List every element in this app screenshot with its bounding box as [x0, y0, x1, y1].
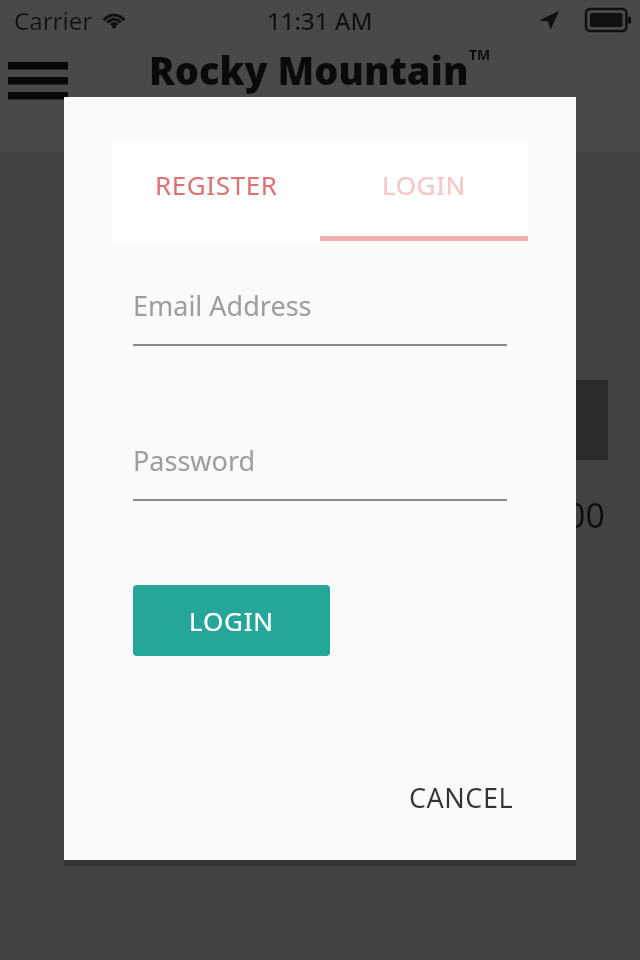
staticText: TM	[469, 45, 491, 64]
button[interactable]: LOGIN	[133, 585, 330, 656]
staticText: 00	[566, 492, 605, 538]
staticText: D	[363, 98, 409, 182]
staticText: Password	[133, 442, 256, 479]
staticText: 11:31 AM	[267, 4, 373, 37]
button[interactable]: Email Address	[133, 287, 507, 346]
button[interactable]: LOGIN	[320, 143, 528, 241]
staticText: D	[253, 98, 299, 182]
staticText: Carrier	[14, 4, 93, 37]
staticText: CANCEL	[409, 779, 514, 816]
staticText: LOGIN	[382, 167, 466, 202]
button[interactable]: Open navigation menu	[0, 48, 76, 106]
staticText: Email Address	[133, 287, 312, 324]
staticText: R	[409, 98, 451, 182]
button[interactable]: CANCEL	[401, 769, 522, 826]
staticText: R	[189, 98, 231, 182]
button[interactable]: Password	[133, 442, 507, 501]
staticText: Rocky Mountain	[149, 44, 469, 96]
staticText: LOGIN	[189, 603, 274, 638]
staticText: REGISTER	[155, 167, 278, 202]
button[interactable]: REGISTER	[112, 143, 320, 241]
